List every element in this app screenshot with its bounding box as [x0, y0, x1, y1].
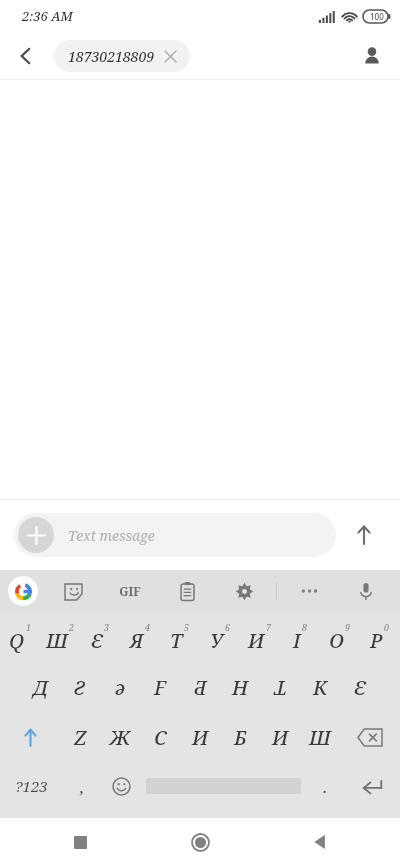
staticText: И: [272, 724, 289, 751]
staticText: Я: [130, 627, 144, 654]
button[interactable]: I: [280, 612, 320, 662]
button[interactable]: С: [140, 712, 180, 762]
button[interactable]: Н: [220, 662, 260, 712]
staticText: Ɛ: [91, 627, 103, 654]
button[interactable]: О: [320, 612, 360, 662]
staticText: 4: [145, 621, 151, 633]
staticText: 0: [384, 621, 390, 633]
button[interactable]: Send: [342, 513, 386, 557]
staticText: ә: [115, 674, 126, 701]
button[interactable]: Recents: [58, 820, 102, 864]
staticText: Ƌ: [194, 674, 207, 701]
staticText: 9: [345, 621, 351, 633]
button[interactable]: Ж: [100, 712, 140, 762]
staticText: Ʇ: [274, 674, 287, 701]
button[interactable]: Ш: [40, 612, 80, 662]
button[interactable]: И: [260, 712, 300, 762]
staticText: 6: [225, 621, 231, 633]
button[interactable]: F: [140, 662, 180, 712]
button[interactable]: Б: [220, 712, 260, 762]
button[interactable]: Space: [141, 762, 306, 810]
staticText: И: [248, 627, 265, 654]
staticText: И: [192, 724, 209, 751]
staticText: Text message: [68, 526, 155, 545]
staticText: 2: [69, 621, 75, 633]
button[interactable]: Ɛ: [80, 612, 120, 662]
staticText: 1: [26, 621, 32, 633]
button[interactable]: Q: [0, 612, 40, 662]
button[interactable]: Keyboard settings: [224, 571, 264, 611]
button[interactable]: Add attachment: [18, 517, 54, 553]
button[interactable]: .: [306, 762, 345, 810]
button[interactable]: Stickers: [54, 571, 94, 611]
button[interactable]: И: [180, 712, 220, 762]
button[interactable]: Backspace: [340, 712, 400, 762]
staticText: У: [210, 627, 224, 654]
button[interactable]: ә: [100, 662, 140, 712]
staticText: С: [154, 724, 167, 751]
button[interactable]: Clipboard: [167, 571, 207, 611]
staticText: Б: [234, 724, 247, 751]
button[interactable]: Ƨ: [60, 662, 100, 712]
staticText: К: [313, 674, 328, 701]
button[interactable]: Z: [60, 712, 100, 762]
staticText: Z: [74, 724, 87, 751]
button[interactable]: Home: [178, 820, 222, 864]
button[interactable]: Google search: [8, 576, 38, 606]
staticText: 2:36 AM: [22, 7, 73, 25]
staticText: Т: [170, 627, 183, 654]
button[interactable]: Ɛ: [340, 662, 380, 712]
button[interactable]: Voice input: [346, 571, 386, 611]
button[interactable]: И: [240, 612, 280, 662]
button[interactable]: Contact details: [352, 36, 392, 76]
staticText: 5: [184, 621, 190, 633]
staticText: Ж: [110, 724, 130, 751]
staticText: .: [323, 775, 328, 798]
staticText: 7: [266, 621, 272, 633]
staticText: Ш: [46, 627, 68, 654]
staticText: Ш: [309, 724, 331, 751]
button[interactable]: Back: [298, 820, 342, 864]
button[interactable]: Д: [20, 662, 60, 712]
staticText: Р: [370, 627, 383, 654]
staticText: Ƨ: [74, 674, 86, 701]
staticText: Н: [232, 674, 249, 701]
staticText: ?123: [15, 776, 48, 796]
button[interactable]: Ƌ: [180, 662, 220, 712]
staticText: I: [293, 627, 301, 654]
staticText: 18730218809: [68, 47, 155, 66]
button[interactable]: Emoji: [102, 762, 141, 810]
button[interactable]: К: [300, 662, 340, 712]
staticText: Q: [9, 627, 25, 654]
button[interactable]: Ʇ: [260, 662, 300, 712]
staticText: F: [154, 674, 166, 701]
button[interactable]: 18730218809: [54, 40, 190, 72]
staticText: 8: [302, 621, 308, 633]
button[interactable]: У: [200, 612, 240, 662]
staticText: ,: [80, 775, 85, 798]
button[interactable]: Back: [6, 36, 46, 76]
button[interactable]: ,: [63, 762, 102, 810]
button[interactable]: GIF: [110, 571, 150, 611]
button[interactable]: Add attachment: [14, 513, 336, 557]
button[interactable]: More options: [289, 571, 329, 611]
button[interactable]: Ш: [300, 712, 340, 762]
staticText: Д: [33, 674, 48, 701]
staticText: GIF: [119, 583, 141, 599]
button[interactable]: Enter: [345, 762, 400, 810]
button[interactable]: Р: [360, 612, 400, 662]
staticText: Ɛ: [354, 674, 366, 701]
button[interactable]: ?123: [0, 762, 63, 810]
button[interactable]: Я: [120, 612, 160, 662]
staticText: О: [329, 627, 344, 654]
staticText: 100: [370, 11, 384, 22]
staticText: 3: [104, 621, 110, 633]
button[interactable]: Shift: [0, 712, 60, 762]
button[interactable]: Т: [160, 612, 200, 662]
